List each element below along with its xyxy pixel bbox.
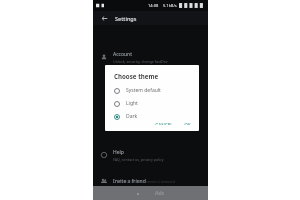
button[interactable]: Dark <box>114 112 194 121</box>
button[interactable]: Account <box>93 49 208 65</box>
button[interactable]: System default <box>114 86 194 95</box>
staticText: Settings <box>115 15 137 22</box>
staticText: OK <box>184 122 191 125</box>
staticText: CANCEL <box>155 122 173 125</box>
button[interactable]: OK <box>183 121 192 126</box>
staticText: Unlock, security, change fastDev <box>113 59 168 64</box>
button[interactable]: Back <box>98 12 110 24</box>
button[interactable]: Light <box>114 99 194 108</box>
staticText: Ads <box>155 190 165 197</box>
staticText: 5.1kB/s <box>163 3 177 8</box>
staticText: Dark <box>126 113 138 120</box>
staticText: 14:08 <box>148 3 159 8</box>
staticText: System default <box>126 87 161 94</box>
staticText: Account <box>113 51 133 58</box>
button[interactable]: Invite a friend <box>93 173 208 189</box>
staticText: Light <box>126 100 138 107</box>
staticText: FAQ, contact us, privacy policy <box>113 157 164 162</box>
staticText: This advertisement is removed <box>126 179 175 184</box>
button[interactable]: Ad banner <box>93 186 208 200</box>
button[interactable]: CANCEL <box>154 121 174 126</box>
staticText: Help <box>113 149 124 156</box>
button[interactable]: Help <box>93 147 208 163</box>
staticText: Choose theme <box>114 72 159 80</box>
staticText: Invite a friend <box>113 178 146 185</box>
